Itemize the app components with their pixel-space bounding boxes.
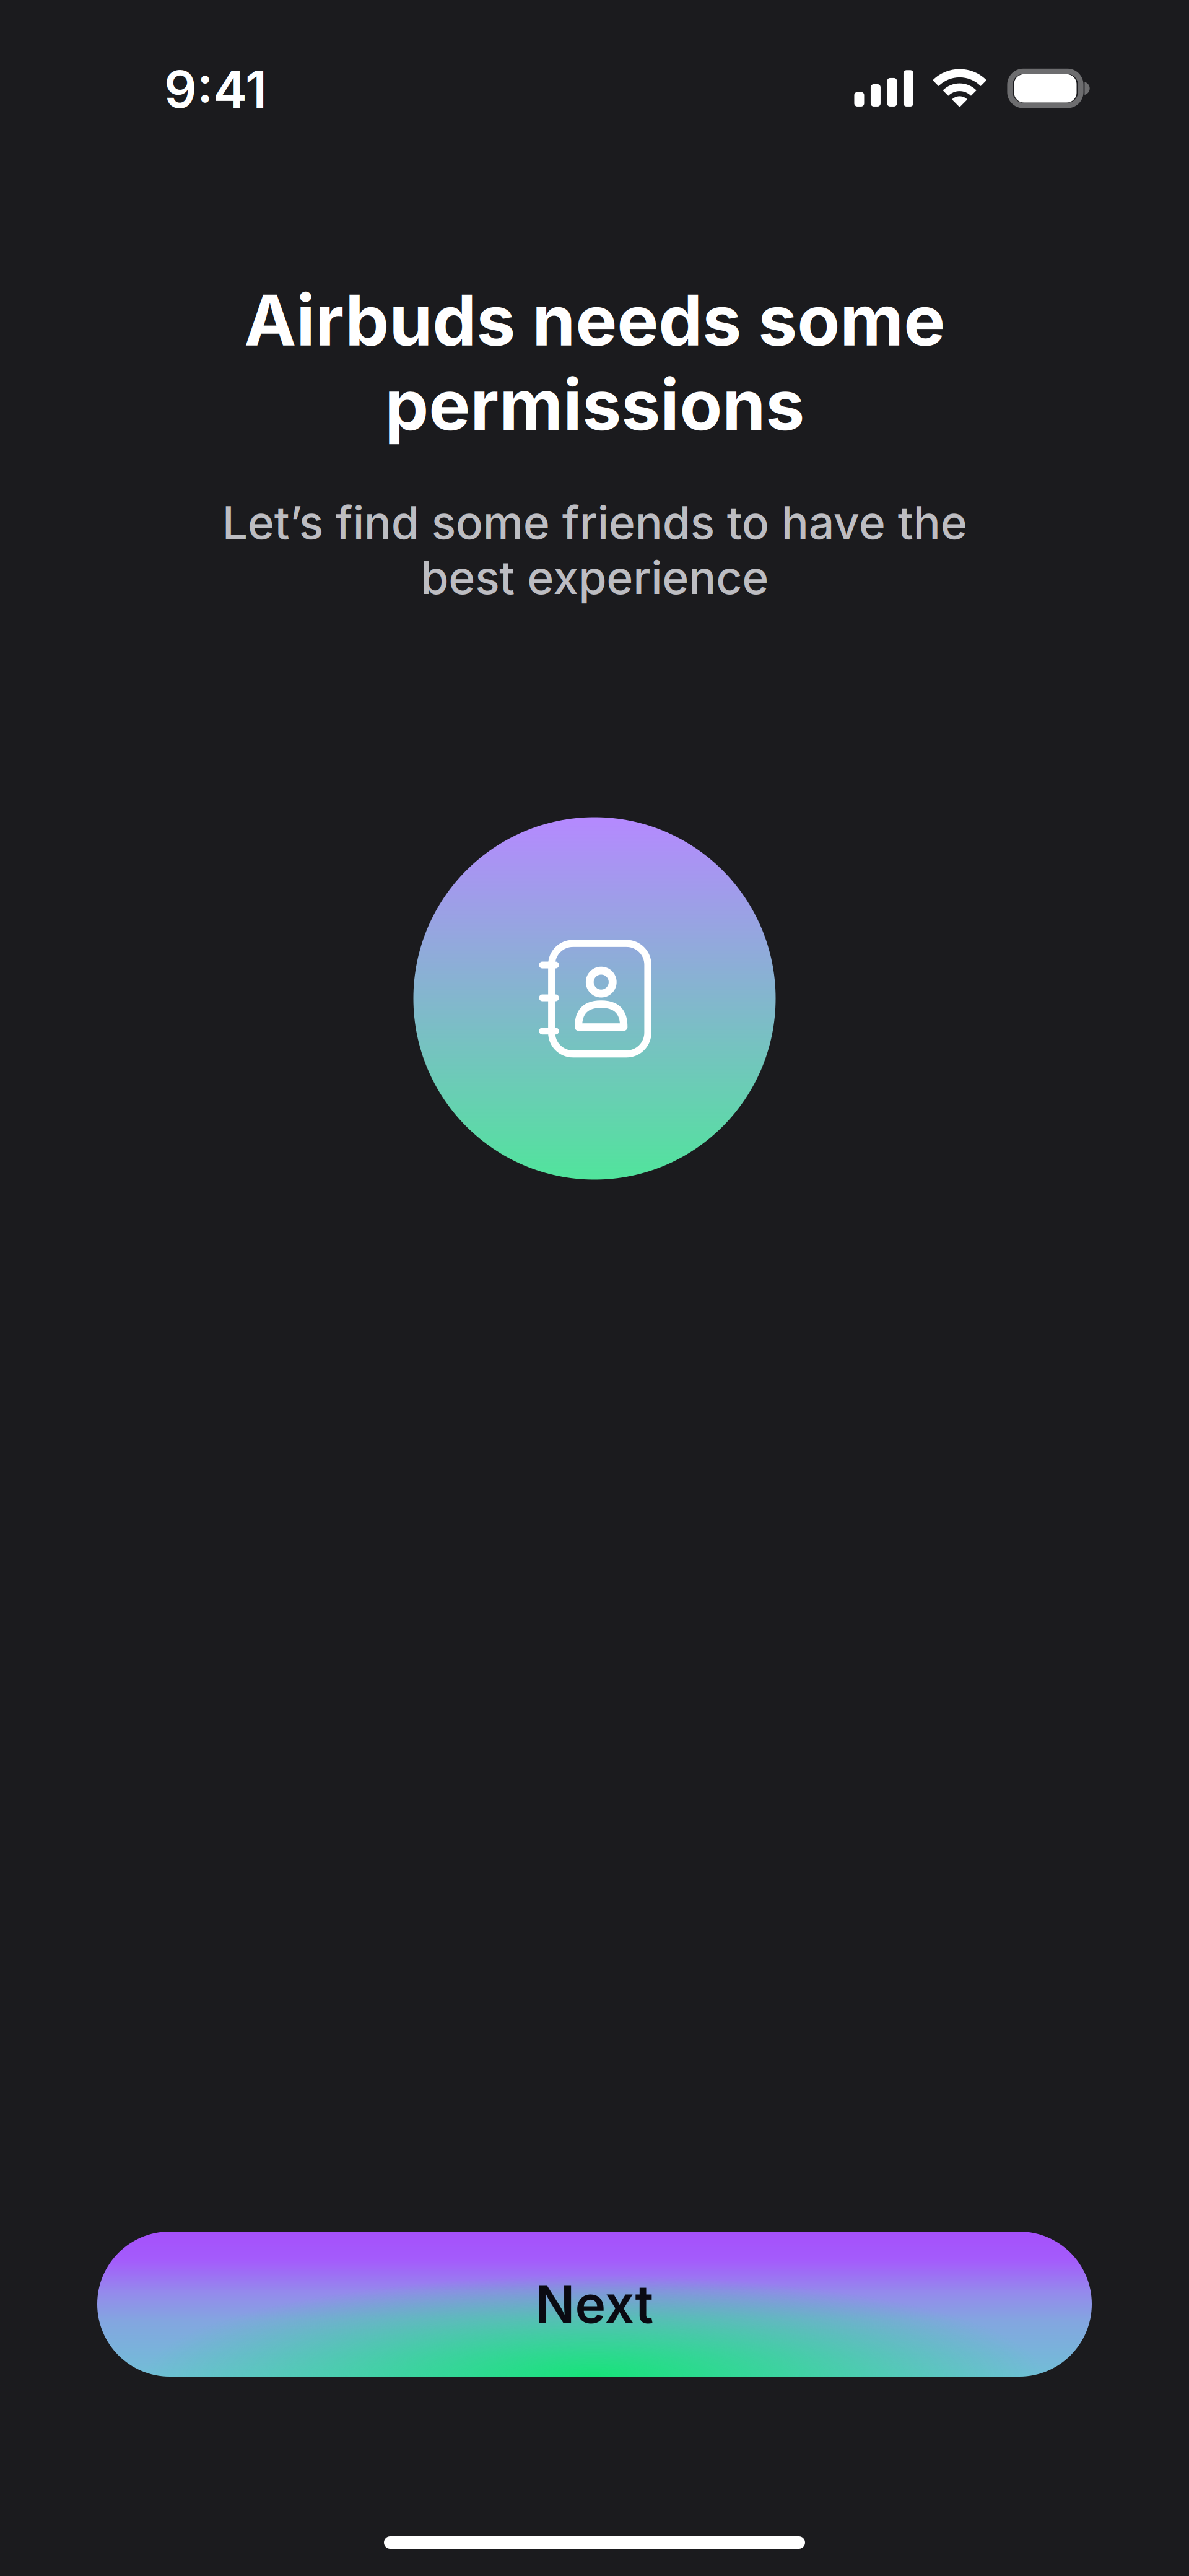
staticText: Next	[535, 2273, 654, 2336]
staticText: Airbuds needs some permissions	[244, 278, 945, 447]
staticText: 9:41	[164, 58, 267, 120]
button[interactable]: Next	[97, 2232, 1092, 2377]
staticText: Let’s find some friends to have the best…	[222, 495, 967, 605]
